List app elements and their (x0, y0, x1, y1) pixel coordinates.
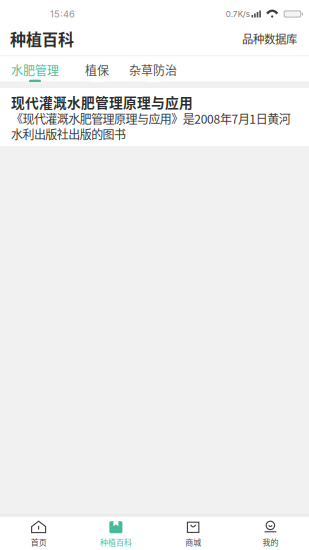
staticText: 商城 (185, 536, 201, 548)
button[interactable]: 杂草防治 (129, 61, 177, 83)
button[interactable]: 种植百科 (77, 515, 154, 550)
button[interactable]: 首页 (0, 515, 77, 550)
staticText: 水利出版社出版的图书 (11, 125, 126, 143)
staticText: 水肥管理 (11, 61, 59, 79)
staticText: 杂草防治 (129, 61, 177, 79)
button[interactable]: 水肥管理 (11, 61, 59, 83)
staticText: 首页 (31, 536, 47, 548)
button[interactable]: 我的 (232, 515, 309, 550)
staticText: 我的 (262, 536, 278, 548)
staticText: 0.7K/s (226, 9, 250, 19)
staticText: 15:46 (50, 8, 75, 20)
button[interactable]: 植保 (85, 61, 109, 83)
button[interactable]: 商城 (154, 515, 232, 550)
staticText: 品种数据库 (242, 30, 297, 47)
button[interactable]: 品种数据库 (240, 23, 299, 54)
staticText: 现代灌溉水肥管理原理与应用 (11, 92, 193, 112)
staticText: 《现代灌溉水肥管理原理与应用》是2008年7月1日黄河 (11, 110, 291, 127)
staticText: 种植百科 (10, 27, 74, 50)
staticText: 植保 (85, 61, 109, 79)
staticText: 种植百科 (100, 536, 132, 548)
